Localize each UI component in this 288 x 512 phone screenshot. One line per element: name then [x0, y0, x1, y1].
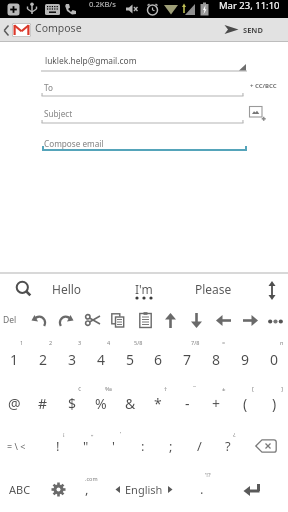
button[interactable] — [249, 106, 267, 121]
button[interactable]: + — [202, 382, 230, 424]
staticText: . — [200, 480, 204, 498]
staticText: - — [185, 394, 190, 413]
button[interactable] — [41, 80, 247, 98]
button[interactable]: Del — [0, 306, 20, 334]
button[interactable] — [257, 275, 287, 305]
button[interactable] — [80, 306, 106, 334]
button[interactable]: @ — [0, 382, 28, 424]
button[interactable]: Compose email — [44, 138, 104, 149]
button[interactable]: Please — [182, 274, 244, 304]
button[interactable] — [26, 306, 52, 334]
staticText: = \ < — [7, 440, 26, 452]
staticText: .com — [85, 475, 98, 482]
button[interactable]: & — [116, 382, 144, 424]
button[interactable]: SEND — [206, 18, 280, 41]
staticText: Del — [3, 314, 17, 326]
button[interactable]: 5 — [116, 338, 144, 380]
button[interactable]: 2 — [29, 338, 57, 380]
staticText: 4 — [97, 350, 106, 369]
button[interactable] — [41, 50, 247, 72]
button[interactable]: 3 — [58, 338, 86, 380]
button[interactable]: 0 — [260, 338, 288, 380]
staticText: + CC/BCC — [250, 82, 277, 90]
staticText: / — [197, 437, 202, 455]
button[interactable]: ' — [100, 425, 127, 467]
button[interactable]: = \ < — [0, 425, 33, 467]
staticText: 5/8 — [134, 339, 143, 346]
button[interactable] — [42, 467, 74, 511]
staticText: ± — [222, 385, 226, 393]
button[interactable]: ABC — [1, 467, 39, 511]
staticText: # — [38, 394, 48, 413]
button[interactable] — [53, 306, 79, 334]
button[interactable]: 8 — [202, 338, 230, 380]
button[interactable]: Hello — [39, 274, 95, 304]
button[interactable]: , — [74, 467, 100, 511]
button[interactable] — [264, 307, 286, 335]
staticText: * — [154, 394, 162, 413]
staticText: @ — [8, 394, 21, 413]
button[interactable]: 7 — [173, 338, 201, 380]
staticText: Mar 23, 11:10 — [219, 0, 280, 12]
staticText: Compose email — [44, 138, 104, 149]
staticText: ¿ — [233, 430, 236, 438]
button[interactable]: Subject — [44, 108, 73, 119]
button[interactable] — [238, 306, 262, 334]
button[interactable]: 4 — [87, 338, 115, 380]
button[interactable]: 1 — [0, 338, 28, 380]
staticText: Please — [195, 281, 232, 297]
staticText: ( — [243, 394, 248, 413]
button[interactable] — [2, 274, 46, 304]
button[interactable]: ! — [44, 425, 71, 467]
button[interactable]: I'm — [119, 274, 169, 304]
staticText: , — [85, 480, 89, 498]
button[interactable]: * — [144, 382, 172, 424]
staticText: ¢ — [78, 385, 82, 393]
button[interactable] — [133, 306, 157, 334]
staticText: ] — [281, 385, 283, 393]
button[interactable] — [12, 23, 31, 37]
button[interactable]: . — [187, 467, 217, 511]
button[interactable]: # — [29, 382, 57, 424]
button[interactable] — [246, 425, 286, 467]
staticText: 2 — [39, 350, 48, 369]
staticText: ! — [56, 437, 60, 455]
staticText: 5 — [126, 350, 135, 369]
button[interactable]: % — [87, 382, 115, 424]
staticText: 4 — [107, 339, 111, 346]
button[interactable]: - — [173, 382, 201, 424]
button[interactable] — [106, 306, 130, 334]
staticText: 7 — [183, 350, 192, 369]
staticText: ¯ — [193, 385, 197, 393]
staticText: " — [83, 437, 89, 455]
button[interactable]: $ — [58, 382, 86, 424]
button[interactable]: ? — [214, 425, 241, 467]
staticText: 1 — [10, 350, 19, 369]
staticText: luklek.help@gmail.com — [45, 55, 137, 66]
button[interactable]: : — [129, 425, 156, 467]
staticText: 8 — [212, 350, 221, 369]
button[interactable] — [232, 468, 272, 512]
staticText: Subject — [44, 108, 73, 119]
staticText: : — [141, 437, 145, 455]
staticText: + — [212, 394, 221, 413]
button[interactable]: " — [72, 425, 99, 467]
button[interactable]: ) — [260, 382, 288, 424]
button[interactable]: / — [186, 425, 213, 467]
staticText: [ — [252, 385, 254, 393]
button[interactable]: English — [109, 467, 179, 511]
button[interactable]: ; — [157, 425, 184, 467]
staticText: 0.2KB/s — [89, 0, 116, 9]
staticText: 7/8 — [191, 339, 200, 346]
staticText: ’ — [120, 430, 122, 438]
button[interactable]: ( — [231, 382, 259, 424]
staticText: 6 — [154, 350, 163, 369]
button[interactable] — [184, 306, 208, 334]
button[interactable]: 6 — [144, 338, 172, 380]
button[interactable]: 9 — [231, 338, 259, 380]
button[interactable] — [158, 306, 182, 334]
staticText: ; — [169, 437, 173, 455]
staticText: English — [125, 482, 163, 497]
staticText: n — [280, 339, 284, 346]
button[interactable] — [211, 306, 235, 334]
